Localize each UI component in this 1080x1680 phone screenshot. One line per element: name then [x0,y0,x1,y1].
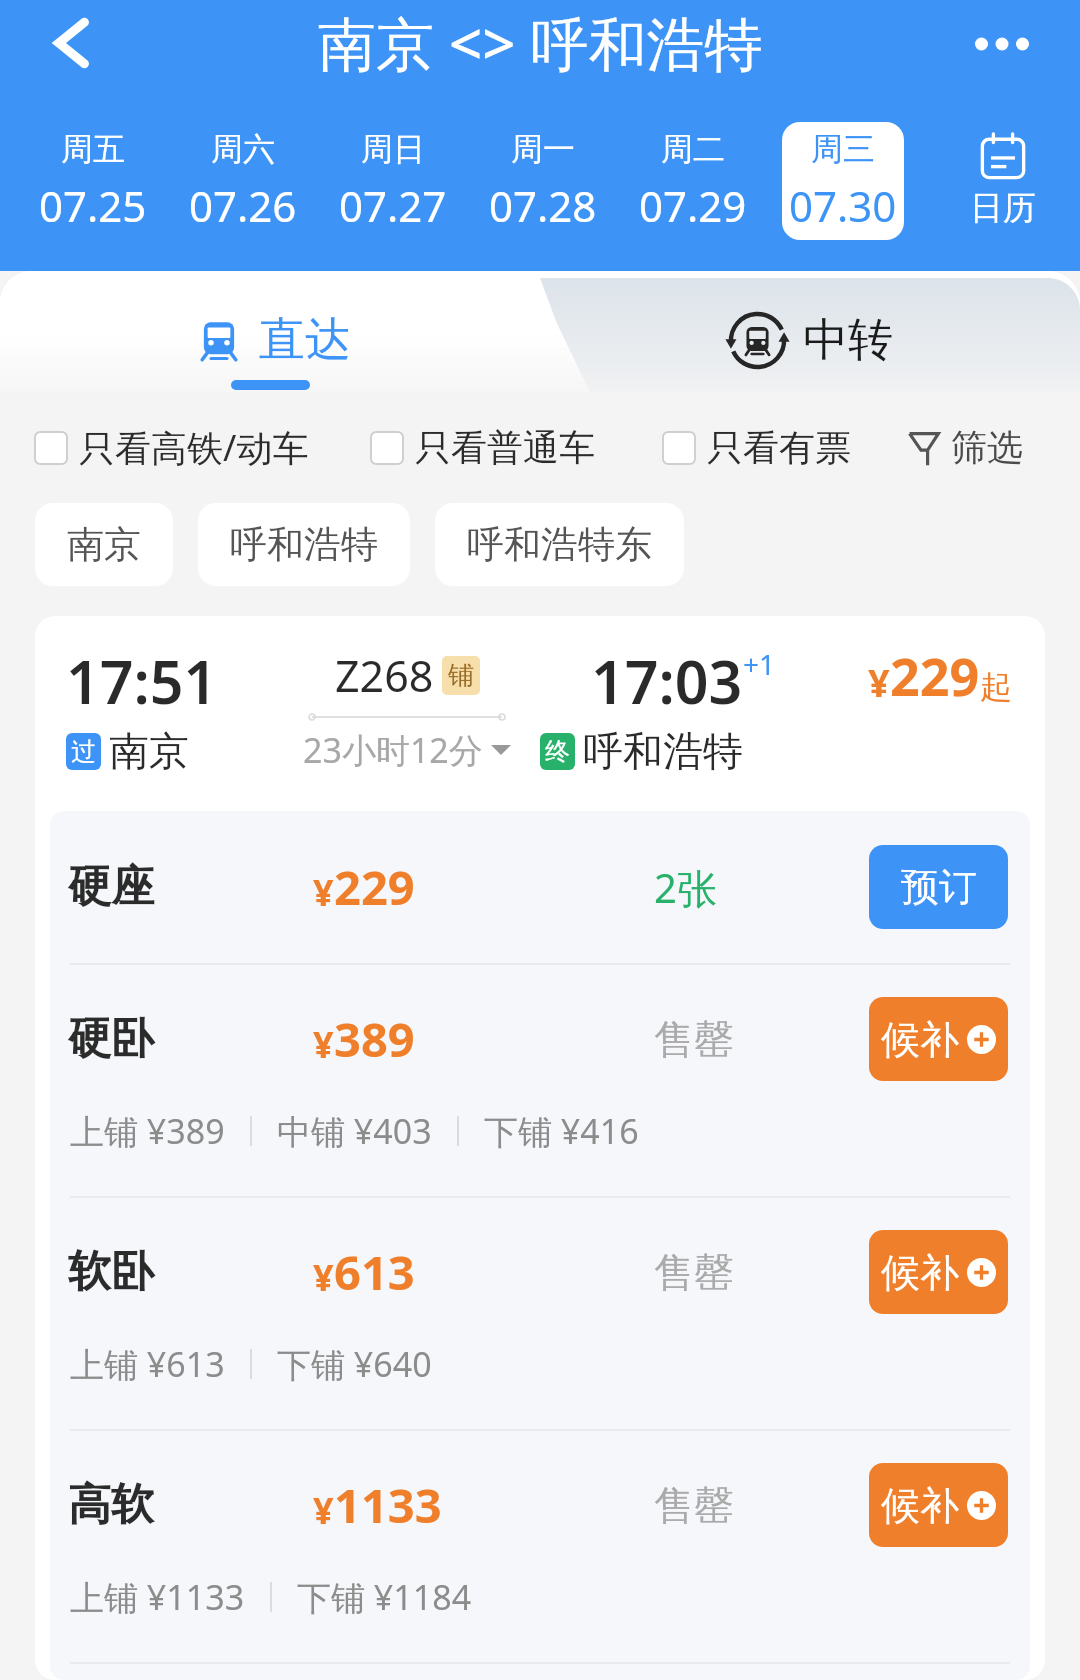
staticText: 07.27 [339,177,447,234]
staticText: Z268 [335,646,434,705]
staticText: 呼和浩特 [230,521,378,568]
staticText: 2张 [654,860,717,915]
staticText: ¥ [313,1486,334,1535]
staticText: 23小时12分 [303,727,483,773]
staticText: 613 [334,1240,415,1304]
staticText: 候补 [881,1015,959,1064]
button[interactable]: 周一 [482,122,604,240]
staticText: 软卧 [68,1245,313,1299]
button[interactable]: More options [953,0,1063,92]
staticText: 上铺 ¥389 [70,1108,225,1154]
button[interactable]: 周六 [182,122,304,240]
staticText: 呼和浩特 [583,726,743,776]
staticText: 南京 [67,521,141,568]
button[interactable]: 周三 [782,122,904,240]
staticText: ¥ [313,1253,334,1302]
button[interactable]: 17:51 [35,616,1045,1680]
staticText: 周一 [511,129,575,169]
staticText: 07.28 [489,177,597,234]
staticText: 南京 [109,726,189,776]
staticText: 终 [545,736,570,767]
button[interactable]: Open calendar [922,122,1080,240]
staticText: 日历 [970,187,1036,229]
staticText: 呼和浩特东 [467,521,652,568]
staticText: 下铺 ¥416 [484,1108,639,1154]
staticText: ¥ [868,656,890,708]
staticText: 起 [980,667,1012,707]
staticText: 17:03 [591,641,743,721]
staticText: 下铺 ¥640 [277,1341,432,1387]
staticText: 中铺 ¥403 [277,1108,432,1154]
staticText: 南京 <> 呼和浩特 [318,3,763,82]
staticText: 17:51 [66,641,218,721]
button[interactable]: 预订 [869,845,1008,929]
staticText: 上铺 ¥613 [70,1341,225,1387]
button[interactable]: 只看普通车 [371,425,595,470]
staticText: 下铺 ¥1184 [297,1574,472,1620]
button[interactable]: 周五 [32,122,154,240]
button[interactable]: 筛选 [909,425,1023,470]
staticText: 周二 [661,129,725,169]
button[interactable]: 候补 [869,1463,1008,1547]
staticText: 预订 [901,863,977,911]
staticText: 周日 [361,129,425,169]
staticText: 上铺 ¥1133 [70,1574,245,1620]
button[interactable]: 直达 [0,271,590,392]
staticText: 硬座 [68,860,313,914]
button[interactable]: 周二 [632,122,754,240]
staticText: 铺 [448,659,474,692]
staticText: ¥ [313,1020,334,1069]
staticText: 候补 [881,1481,959,1530]
staticText: 07.26 [189,177,297,234]
button[interactable]: 呼和浩特 [198,503,410,586]
staticText: 过 [71,736,96,767]
staticText: 07.30 [789,177,897,234]
staticText: 229 [890,640,980,711]
staticText: 只看普通车 [415,425,595,470]
staticText: 07.25 [39,177,147,234]
staticText: 直达 [259,311,351,369]
staticText: 周三 [811,129,875,169]
staticText: 229 [334,855,415,919]
staticText: 周六 [211,129,275,169]
staticText: ¥ [313,868,334,917]
staticText: 售罄 [654,1014,734,1064]
button[interactable]: 周日 [332,122,454,240]
staticText: 售罄 [654,1247,734,1297]
staticText: 07.29 [639,177,747,234]
staticText: 筛选 [951,425,1023,470]
button[interactable]: 只看高铁/动车 [35,423,309,472]
button[interactable]: 南京 [35,503,173,586]
staticText: 高软 [68,1478,313,1532]
staticText: 周五 [61,129,125,169]
staticText: 售罄 [654,1480,734,1530]
button[interactable]: Back [16,0,126,91]
staticText: +1 [743,645,776,683]
button[interactable]: 候补 [869,1230,1008,1314]
button[interactable]: 呼和浩特东 [435,503,684,586]
button[interactable]: 中转 [540,278,1080,399]
staticText: 1133 [334,1473,442,1537]
staticText: 只看有票 [707,425,851,470]
staticText: 硬卧 [68,1012,313,1066]
button[interactable]: 候补 [869,997,1008,1081]
button[interactable]: 只看有票 [663,425,851,470]
staticText: 候补 [881,1248,959,1297]
staticText: 只看高铁/动车 [79,423,309,472]
staticText: 389 [334,1007,415,1071]
staticText: 中转 [803,312,893,369]
